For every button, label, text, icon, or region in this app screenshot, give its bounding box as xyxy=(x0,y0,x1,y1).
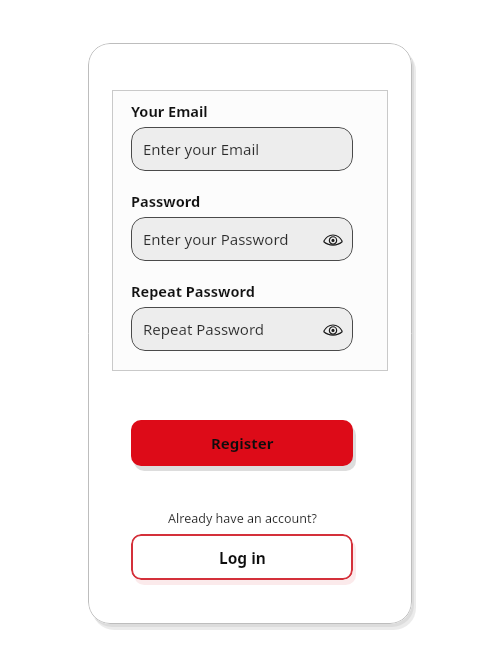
button[interactable]: Enter your Password xyxy=(131,217,353,261)
button[interactable]: Show password xyxy=(320,226,346,252)
staticText: Password xyxy=(131,191,201,211)
button[interactable]: Show repeated password xyxy=(320,316,346,342)
staticText: Repeat Password xyxy=(143,319,265,339)
button[interactable]: Enter your Email xyxy=(131,127,353,171)
staticText: Enter your Password xyxy=(143,229,289,249)
staticText: Enter your Email xyxy=(143,139,260,159)
staticText: Your Email xyxy=(131,101,208,121)
button[interactable]: Log in xyxy=(131,534,353,580)
staticText: Already have an account? xyxy=(168,510,317,527)
button[interactable]: Register xyxy=(131,420,353,466)
button[interactable]: Repeat Password xyxy=(131,307,353,351)
staticText: Repeat Password xyxy=(131,281,255,301)
staticText: Log in xyxy=(219,547,266,568)
staticText: Register xyxy=(211,433,274,453)
